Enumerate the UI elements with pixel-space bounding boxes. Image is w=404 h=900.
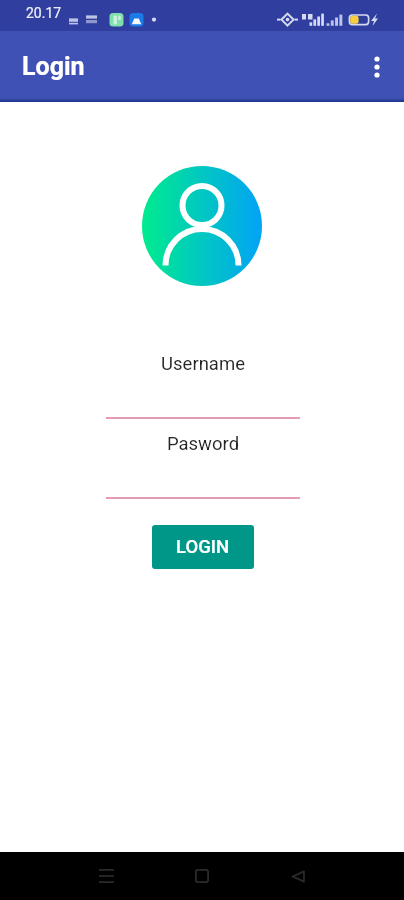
button[interactable]: Back xyxy=(274,852,322,900)
button[interactable]: More options xyxy=(357,47,397,87)
staticText: Login xyxy=(22,52,85,81)
button[interactable]: Profile xyxy=(142,166,262,286)
button[interactable]: LOGIN xyxy=(152,525,254,569)
button[interactable]: Recents xyxy=(82,852,130,900)
button[interactable]: Username xyxy=(106,351,300,419)
button[interactable]: Pasword xyxy=(106,431,300,499)
staticText: Username xyxy=(106,353,300,375)
staticText: Pasword xyxy=(106,433,300,455)
button[interactable]: Home xyxy=(178,852,226,900)
staticText: LOGIN xyxy=(176,536,230,558)
staticText: 20.17 xyxy=(26,5,62,21)
